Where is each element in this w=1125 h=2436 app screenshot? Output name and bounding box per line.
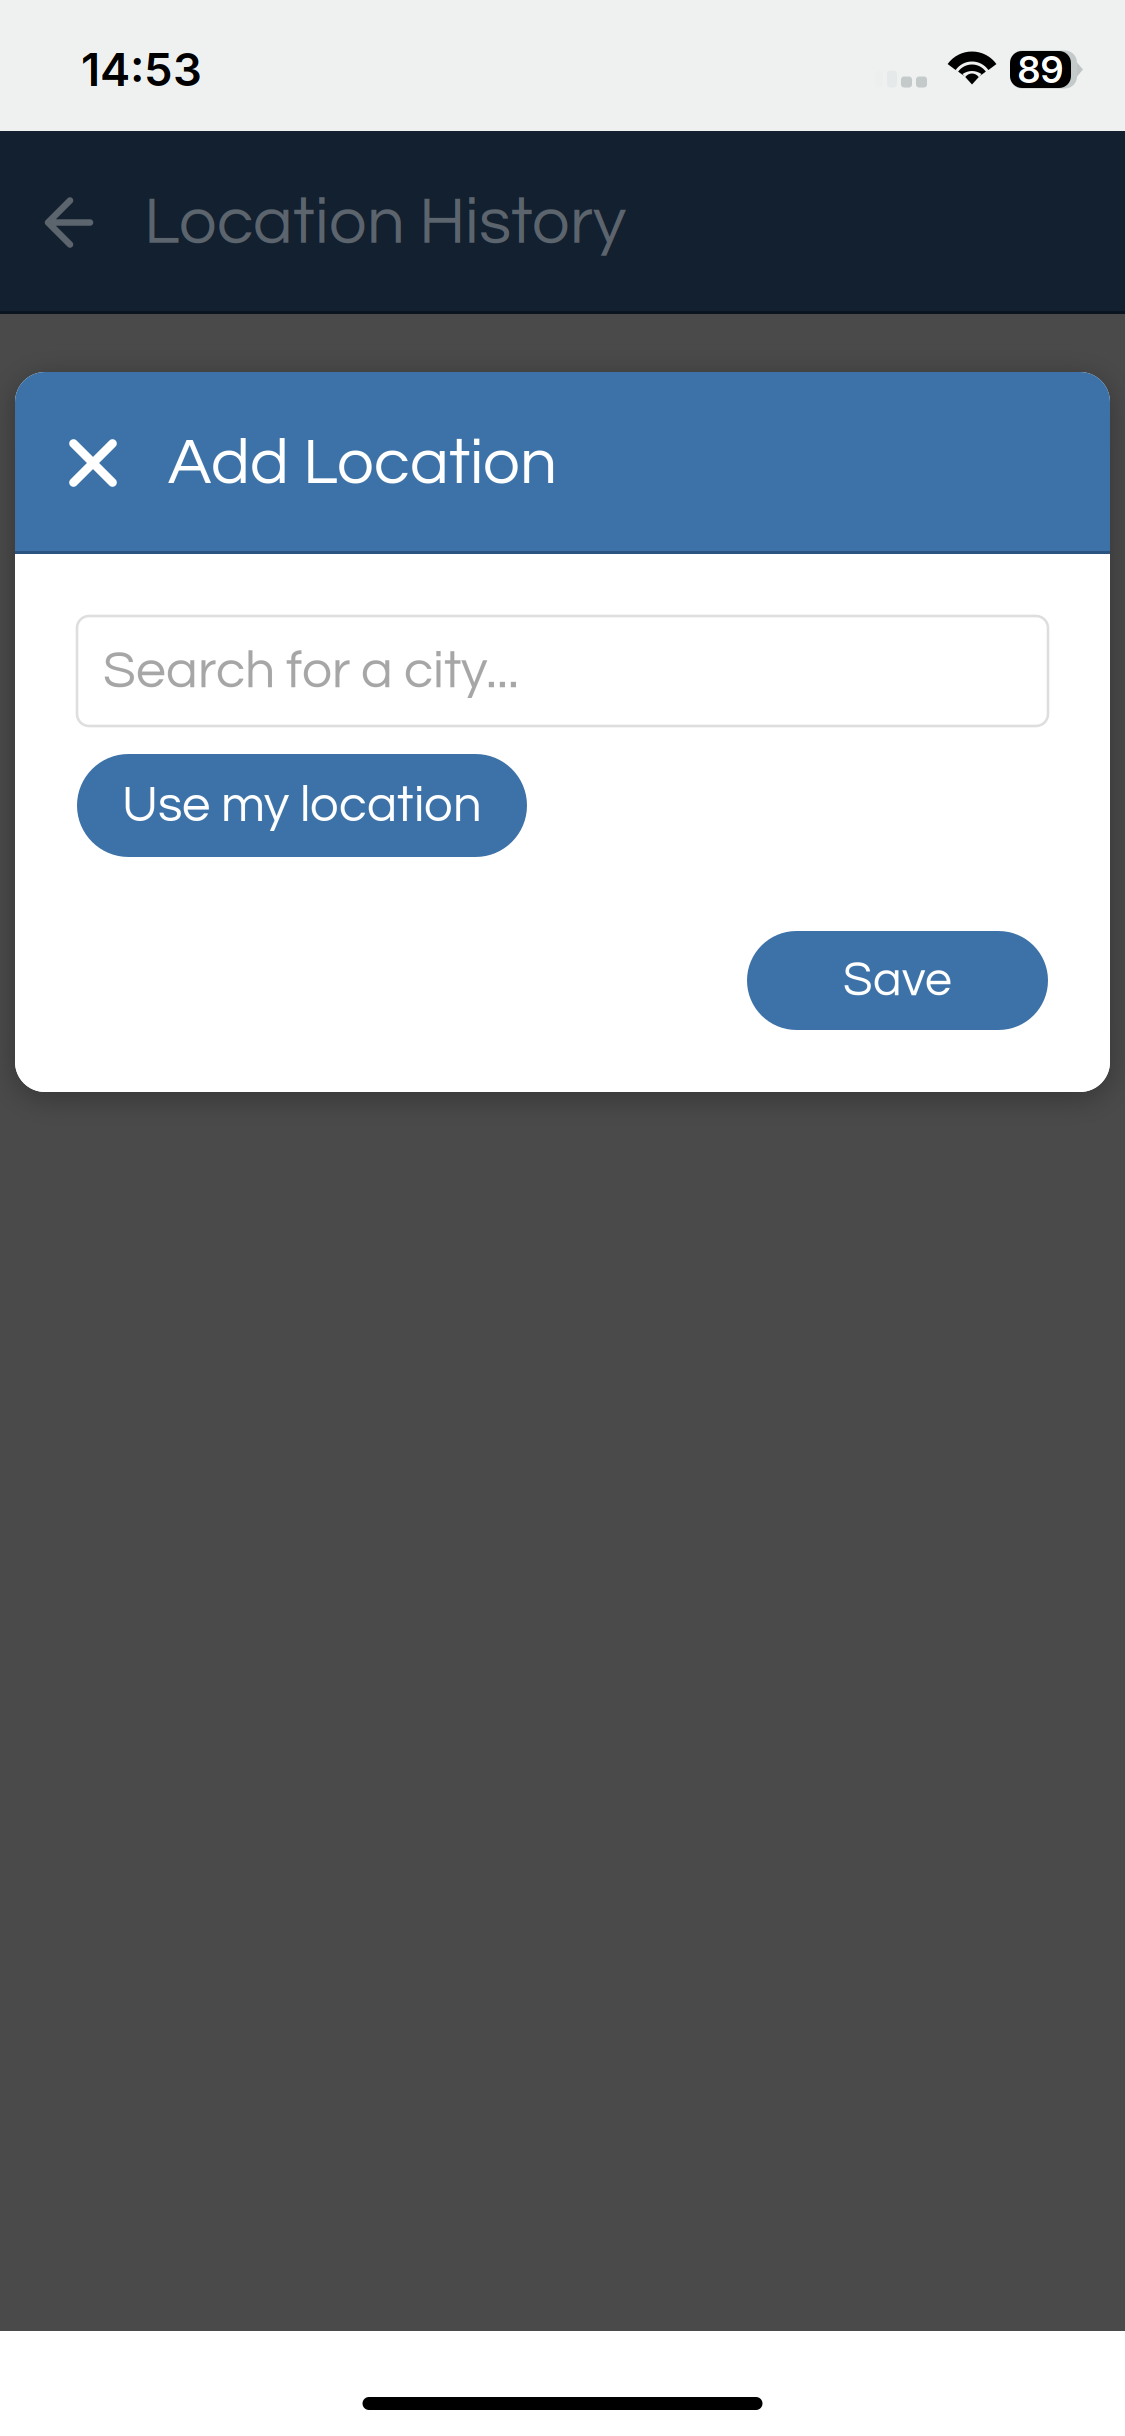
- staticText: 89: [1017, 47, 1063, 92]
- staticText: Location History: [144, 188, 626, 257]
- button[interactable]: Back: [44, 173, 144, 271]
- staticText: Search for a city...: [103, 643, 519, 698]
- staticText: Save: [843, 956, 952, 1005]
- button[interactable]: Save: [747, 931, 1048, 1030]
- button[interactable]: Use my location: [77, 754, 527, 857]
- staticText: Use my location: [122, 779, 482, 832]
- staticText: 14:53: [81, 42, 202, 97]
- staticText: Add Location: [168, 429, 557, 497]
- button[interactable]: Close: [55, 425, 131, 501]
